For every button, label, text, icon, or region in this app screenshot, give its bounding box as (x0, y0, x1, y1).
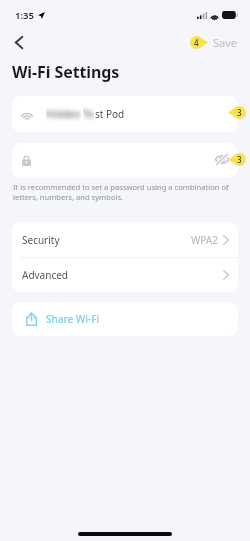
staticText: Security (22, 233, 60, 247)
staticText: Advanced (22, 268, 68, 282)
staticText: st Pod (95, 107, 125, 121)
staticText: It is recommended to set a password usin… (13, 182, 235, 202)
staticText: 1:35 (15, 9, 34, 22)
button[interactable]: 4 (190, 35, 238, 50)
button[interactable]: Show password (12, 143, 238, 178)
button[interactable]: Back (6, 29, 32, 55)
staticText: 3 (237, 154, 242, 165)
button[interactable]: Show password (215, 154, 229, 165)
staticText: Wi-Fi Settings (12, 61, 120, 83)
staticText: Share Wi-Fi (46, 312, 100, 326)
button[interactable]: Hidden (12, 96, 238, 132)
staticText: 3 (237, 107, 242, 118)
button[interactable]: Security (12, 222, 238, 257)
button[interactable]: Advanced (12, 258, 238, 292)
button[interactable]: Share Wi-Fi (12, 302, 238, 336)
staticText: Save (213, 35, 238, 50)
staticText: Hidden (46, 107, 81, 121)
staticText: WPA2 (191, 233, 218, 247)
staticText: Te (83, 107, 94, 121)
staticText: 4 (194, 37, 199, 48)
